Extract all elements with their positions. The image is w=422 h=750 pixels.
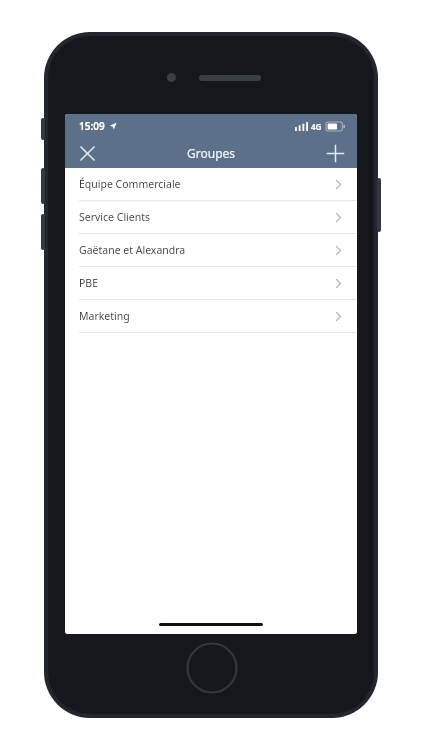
button[interactable]: Fermer — [65, 138, 109, 168]
staticText: Service Clients — [79, 210, 151, 224]
staticText: Marketing — [79, 309, 130, 323]
staticText: Gaëtane et Alexandra — [79, 243, 186, 257]
staticText: PBE — [79, 276, 99, 290]
staticText: Groupes — [187, 145, 236, 161]
button[interactable]: PBE — [65, 267, 357, 300]
button[interactable]: Gaëtane et Alexandra — [65, 234, 357, 267]
button[interactable]: Équipe Commerciale — [65, 168, 357, 201]
staticText: Équipe Commerciale — [79, 177, 181, 191]
staticText: 4G — [311, 121, 322, 132]
button[interactable]: Marketing — [65, 300, 357, 333]
button[interactable]: Ajouter un groupe — [313, 138, 357, 168]
staticText: 15:09 — [79, 119, 105, 133]
button[interactable]: Service Clients — [65, 201, 357, 234]
